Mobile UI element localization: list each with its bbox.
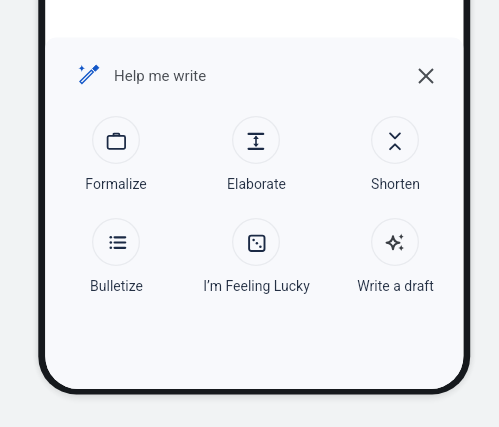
button[interactable]: Close xyxy=(406,56,446,96)
button[interactable]: Elaborate xyxy=(190,116,322,192)
staticText: I’m Feeling Lucky xyxy=(203,278,310,294)
staticText: Write a draft xyxy=(357,278,434,294)
staticText: Bulletize xyxy=(90,278,143,294)
staticText: Help me write xyxy=(114,67,207,85)
staticText: Shorten xyxy=(371,176,420,192)
button[interactable]: Shorten xyxy=(329,116,461,192)
button[interactable]: Formalize xyxy=(50,116,182,192)
button[interactable]: I’m Feeling Lucky xyxy=(190,218,322,294)
staticText: Formalize xyxy=(85,176,147,192)
button[interactable]: Write a draft xyxy=(329,218,461,294)
staticText: Elaborate xyxy=(227,176,286,192)
button[interactable]: Bulletize xyxy=(50,218,182,294)
